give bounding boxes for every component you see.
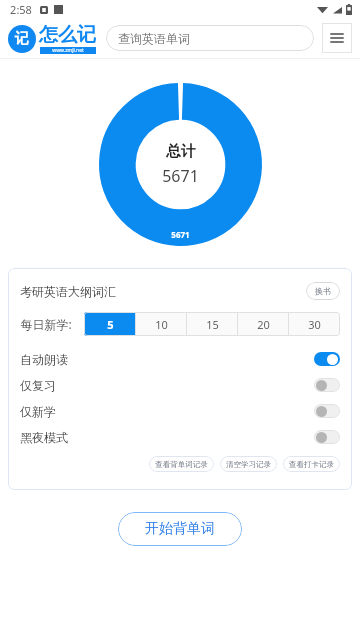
staticText: 5671 — [171, 229, 190, 240]
staticText: 自动朗读 — [20, 352, 68, 367]
button[interactable]: Menu — [322, 23, 352, 53]
staticText: 考研英语大纲词汇 — [20, 284, 116, 299]
button[interactable]: 查看打卡记录 — [283, 456, 340, 472]
staticText: 查询英语单词 — [118, 31, 190, 46]
button[interactable]: 查询英语单词 — [106, 25, 314, 51]
staticText: www.zmji.net — [52, 47, 84, 54]
staticText: 5671 — [162, 165, 199, 187]
staticText: 换书 — [315, 286, 331, 296]
button[interactable]: 仅新学 — [20, 398, 340, 424]
button[interactable]: 自动朗读 — [20, 346, 340, 372]
staticText: 清空学习记录 — [226, 460, 271, 469]
staticText: 查看背单词记录 — [155, 460, 208, 469]
staticText: 15 — [206, 317, 219, 332]
button[interactable]: 20 — [238, 312, 289, 336]
button[interactable]: 换书 — [306, 282, 340, 300]
button[interactable]: 开始背单词 — [118, 512, 242, 546]
staticText: 怎么记 — [39, 23, 96, 47]
button[interactable]: 黑夜模式 — [20, 424, 340, 450]
staticText: 每日新学: — [20, 316, 72, 332]
button[interactable]: 10 — [136, 312, 187, 336]
button[interactable]: 30 — [289, 312, 340, 336]
staticText: 黑夜模式 — [20, 430, 68, 445]
button[interactable]: 5 — [84, 312, 136, 336]
button[interactable]: 15 — [187, 312, 238, 336]
staticText: 开始背单词 — [145, 520, 215, 538]
staticText: 查看打卡记录 — [289, 460, 334, 469]
staticText: 总计 — [166, 142, 196, 161]
staticText: 5 — [107, 317, 114, 332]
staticText: 2:58 — [10, 2, 32, 17]
staticText: 30 — [308, 317, 321, 332]
button[interactable]: 查看背单词记录 — [149, 456, 214, 472]
staticText: 10 — [155, 317, 168, 332]
button[interactable]: 清空学习记录 — [220, 456, 277, 472]
staticText: 仅复习 — [20, 378, 56, 393]
staticText: 仅新学 — [20, 404, 56, 419]
staticText: 20 — [257, 317, 270, 332]
button[interactable]: 仅复习 — [20, 372, 340, 398]
staticText: 记 — [15, 30, 29, 48]
